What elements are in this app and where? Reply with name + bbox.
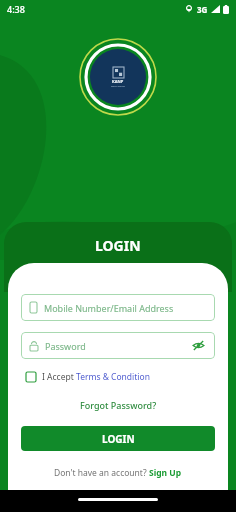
button[interactable]: I Accept bbox=[21, 371, 215, 383]
staticText: KANP bbox=[112, 79, 124, 84]
staticText: 4:38 bbox=[7, 3, 25, 15]
button[interactable]: Don't have an account? bbox=[54, 467, 182, 479]
button[interactable]: Show password bbox=[191, 338, 206, 353]
staticText: Terms & Condition bbox=[76, 371, 150, 383]
button[interactable]: Forgot Password? bbox=[74, 397, 163, 413]
staticText: Mobile Number/Email Address bbox=[44, 302, 174, 314]
staticText: Don't have an account? bbox=[54, 467, 149, 479]
staticText: 3G bbox=[197, 4, 208, 15]
staticText: SOLUTIONS bbox=[111, 84, 125, 87]
staticText: Forgot Password? bbox=[80, 399, 157, 411]
staticText: LOGIN bbox=[95, 236, 141, 255]
button[interactable]: LOGIN bbox=[21, 426, 215, 451]
staticText: Sign Up bbox=[149, 467, 182, 479]
staticText: I Accept bbox=[42, 371, 76, 383]
button[interactable]: Password bbox=[21, 332, 215, 359]
button[interactable]: Mobile Number/Email Address bbox=[21, 294, 215, 321]
staticText: LOGIN bbox=[102, 432, 135, 446]
staticText: Password bbox=[45, 340, 86, 352]
